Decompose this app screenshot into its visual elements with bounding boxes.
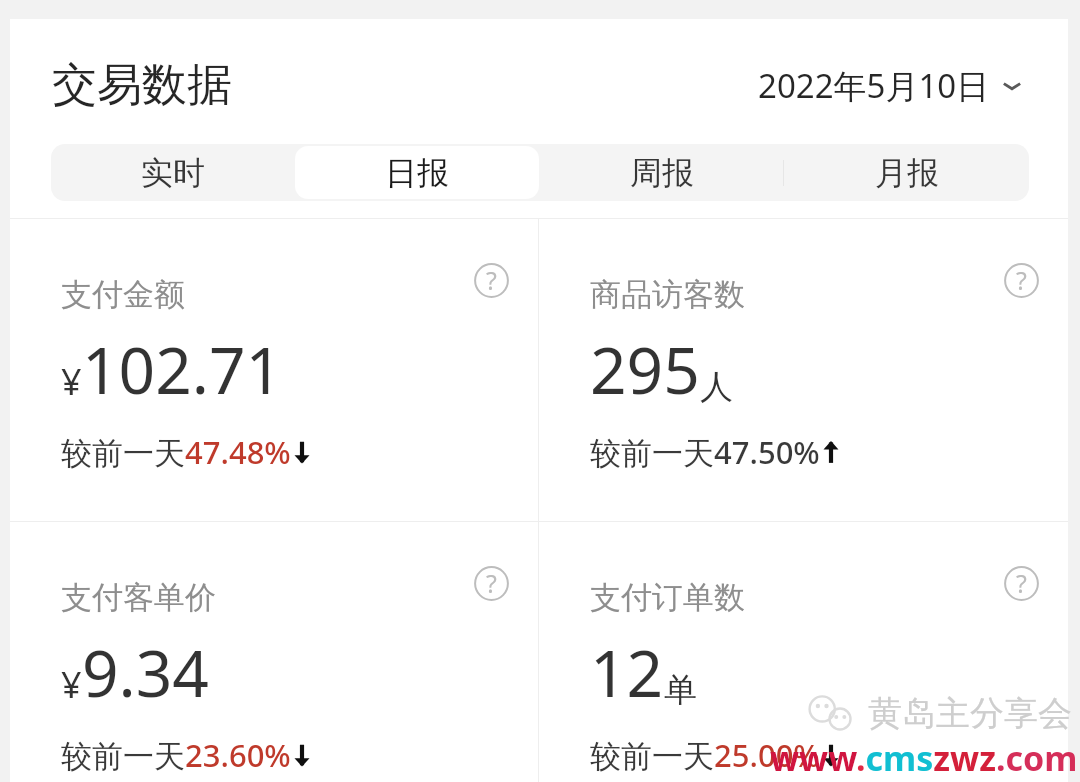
staticText: ?: [1016, 566, 1027, 600]
staticText: 交易数据: [52, 57, 232, 114]
staticText: 周报: [630, 153, 694, 193]
button[interactable]: 月报: [784, 144, 1029, 201]
staticText: 较前一天23.60%: [61, 734, 291, 776]
button[interactable]: 支付客单价: [10, 522, 538, 782]
staticText: 单: [664, 669, 697, 711]
staticText: 月报: [875, 153, 939, 193]
button[interactable]: 指标说明: [468, 560, 514, 606]
staticText: ¥: [61, 357, 82, 406]
staticText: 商品访客数: [590, 275, 745, 314]
staticText: 日报: [385, 153, 449, 193]
staticText: 支付金额: [61, 275, 185, 314]
button[interactable]: 日报: [295, 144, 539, 201]
staticText: 支付客单价: [61, 578, 216, 617]
button[interactable]: 支付金额: [10, 219, 538, 521]
button[interactable]: 指标说明: [998, 560, 1044, 606]
staticText: ?: [486, 263, 497, 297]
staticText: 实时: [141, 153, 205, 193]
staticText: 12: [590, 629, 664, 716]
staticText: 较前一天47.48%: [61, 431, 291, 473]
staticText: 295: [590, 326, 700, 413]
staticText: 较前一天47.50%: [590, 431, 820, 473]
staticText: ?: [486, 566, 497, 600]
staticText: 支付订单数: [590, 578, 745, 617]
button[interactable]: 指标说明: [998, 257, 1044, 303]
staticText: 102.71: [82, 326, 283, 413]
staticText: 人: [700, 366, 733, 408]
staticText: 较前一天25.00%: [590, 734, 820, 776]
staticText: ?: [1016, 263, 1027, 297]
button[interactable]: 实时: [51, 144, 295, 201]
staticText: ¥: [61, 660, 82, 709]
button[interactable]: 周报: [539, 144, 784, 201]
button[interactable]: 指标说明: [468, 257, 514, 303]
button[interactable]: 商品访客数: [539, 219, 1068, 521]
button[interactable]: 2022年5月10日: [754, 57, 1028, 114]
staticText: 2022年5月10日: [758, 63, 990, 108]
staticText: 黄岛主分享会: [868, 692, 1072, 735]
staticText: 9.34: [82, 629, 209, 716]
button[interactable]: 支付订单数: [539, 522, 1068, 782]
staticText: www.cmszwz.com: [770, 735, 1078, 781]
